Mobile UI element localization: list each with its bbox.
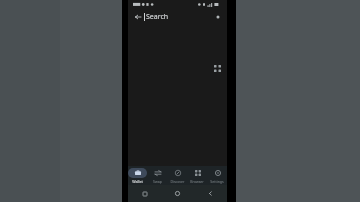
- button[interactable]: Search: [144, 8, 212, 25]
- button[interactable]: Browser: [187, 166, 207, 185]
- staticText: Settings: [210, 179, 224, 184]
- button[interactable]: Recent apps: [128, 185, 161, 202]
- staticText: Browser: [190, 179, 204, 184]
- button[interactable]: Swap: [147, 166, 167, 185]
- button[interactable]: Back: [194, 185, 227, 202]
- staticText: Search: [146, 12, 169, 22]
- button[interactable]: Discover: [167, 166, 187, 185]
- staticText: Discover: [170, 179, 185, 184]
- button[interactable]: Home: [161, 185, 194, 202]
- staticText: Swap: [153, 179, 162, 184]
- button[interactable]: Grid view: [210, 61, 224, 75]
- staticText: Wallet: [132, 179, 143, 184]
- button[interactable]: Voice search: [212, 11, 224, 23]
- button[interactable]: Settings: [207, 166, 227, 185]
- button[interactable]: Wallet: [128, 166, 147, 185]
- button[interactable]: Back: [131, 10, 144, 23]
